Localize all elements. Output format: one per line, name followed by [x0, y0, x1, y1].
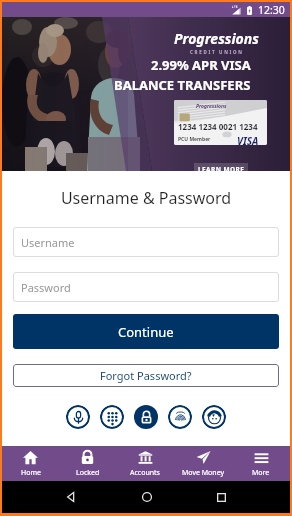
- staticText: Username & Password: [13, 187, 279, 209]
- staticText: Forgot Password?: [100, 368, 192, 383]
- button[interactable]: Home: [141, 491, 153, 503]
- staticText: Password: [21, 280, 71, 295]
- button[interactable]: LEARN MORE: [194, 163, 248, 175]
- staticText: Locked: [76, 468, 100, 478]
- staticText: Username: [21, 235, 75, 250]
- button[interactable]: Recent apps: [216, 492, 227, 503]
- staticText: LEARN MORE: [198, 165, 245, 174]
- staticText: BALANCE TRANSFERS: [114, 76, 251, 94]
- button[interactable]: Face sign in: [202, 405, 226, 429]
- button[interactable]: More: [232, 446, 290, 481]
- staticText: Progressions: [196, 103, 227, 110]
- staticText: Progressions: [174, 29, 259, 48]
- button[interactable]: Password sign in: [134, 405, 158, 429]
- button[interactable]: Locked: [59, 446, 116, 481]
- staticText: More: [252, 468, 270, 478]
- staticText: Move Money: [182, 468, 225, 478]
- button[interactable]: Accounts: [116, 446, 174, 481]
- staticText: Home: [21, 468, 41, 478]
- staticText: PCU Member: [178, 136, 211, 143]
- button[interactable]: Home: [2, 446, 59, 481]
- staticText: Accounts: [130, 468, 160, 478]
- button[interactable]: Password: [13, 272, 279, 302]
- button[interactable]: Fingerprint sign in: [168, 405, 192, 429]
- button[interactable]: Back: [65, 491, 77, 503]
- staticText: CREDIT UNION: [190, 49, 244, 55]
- button[interactable]: Voice sign in: [66, 405, 90, 429]
- button[interactable]: Username: [13, 227, 279, 257]
- staticText: 1234 1234 0021 1234: [178, 121, 258, 132]
- button[interactable]: Continue: [13, 314, 279, 349]
- staticText: Continue: [118, 323, 174, 341]
- staticText: VISA: [237, 134, 259, 145]
- button[interactable]: Move Money: [174, 446, 232, 481]
- staticText: 2.99% APR VISA: [151, 56, 251, 74]
- button[interactable]: PIN keypad: [100, 405, 124, 429]
- button[interactable]: Forgot Password?: [13, 364, 279, 387]
- staticText: 12:30: [258, 3, 285, 17]
